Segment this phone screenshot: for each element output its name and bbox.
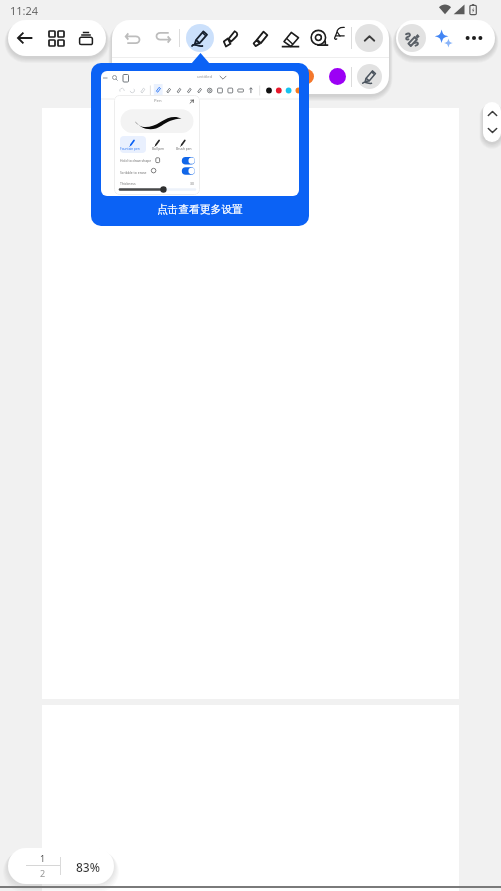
button[interactable]: Pen settings: [357, 64, 382, 89]
button[interactable]: Back: [14, 27, 36, 49]
button[interactable]: Pages: [75, 27, 97, 49]
staticText: Hold to draw shape: [120, 158, 152, 163]
button[interactable]: Redo: [150, 25, 176, 51]
staticText: 点击查看更多设置: [157, 203, 243, 216]
button[interactable]: Shape tool: [336, 25, 351, 51]
staticText: Ball pen: [152, 147, 165, 151]
button[interactable]: Undo: [120, 25, 146, 51]
button[interactable]: Scroll up: [486, 107, 499, 120]
button[interactable]: Color orange: [299, 69, 314, 84]
staticText: untitled: [197, 74, 213, 80]
staticText: Brush pen: [176, 147, 192, 151]
button[interactable]: Smart write: [398, 24, 426, 52]
button[interactable]: Color purple: [329, 68, 346, 85]
staticText: Thickness: [120, 181, 136, 186]
staticText: 2: [40, 867, 46, 879]
button[interactable]: More options: [464, 28, 484, 48]
button[interactable]: untitled: [91, 63, 309, 226]
staticText: Fountain pen: [120, 147, 140, 151]
button[interactable]: Page 1 of 2, zoom 83%: [8, 848, 114, 884]
button[interactable]: Shapes: [306, 25, 332, 51]
button[interactable]: AI assist: [434, 29, 453, 48]
staticText: Scribble to erase: [120, 170, 147, 175]
button[interactable]: Collapse toolbar: [355, 24, 383, 52]
button[interactable]: Eraser: [277, 25, 303, 51]
button[interactable]: Grid view: [45, 27, 67, 49]
button[interactable]: Highlighter: [247, 25, 273, 51]
staticText: 1: [40, 852, 46, 864]
staticText: 30: [190, 181, 194, 186]
button[interactable]: Brush: [217, 25, 243, 51]
button[interactable]: Scroll down: [486, 124, 499, 137]
staticText: 83%: [76, 859, 100, 875]
staticText: Pen: [154, 98, 162, 104]
staticText: 11:24: [10, 3, 39, 18]
button[interactable]: Pen: [186, 24, 214, 52]
